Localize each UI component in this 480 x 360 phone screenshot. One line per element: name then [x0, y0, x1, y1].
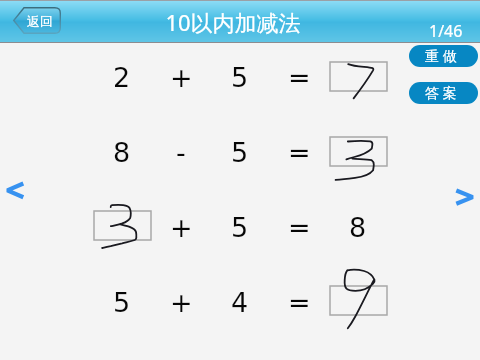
staticText: 重 做	[425, 46, 457, 65]
button[interactable]: Redo	[409, 45, 478, 67]
staticText: +	[170, 62, 193, 93]
button[interactable]: 返回	[13, 7, 61, 34]
button[interactable]: Show answer	[409, 82, 478, 104]
staticText: 5	[113, 287, 131, 318]
staticText: =	[288, 212, 311, 243]
staticText: 10以内加减法	[0, 7, 473, 37]
button[interactable]: Next question	[445, 180, 479, 218]
staticText: =	[288, 62, 311, 93]
staticText: 2	[113, 62, 131, 93]
button[interactable]: Previous question	[0, 172, 34, 210]
staticText: +	[170, 287, 193, 318]
staticText: 1/46	[429, 20, 463, 42]
staticText: 返回	[27, 13, 53, 29]
staticText: +	[170, 212, 193, 243]
staticText: =	[288, 287, 311, 318]
staticText: 5	[231, 137, 249, 168]
staticText: 8	[349, 212, 367, 243]
staticText: 8	[113, 137, 131, 168]
staticText: 4	[231, 287, 249, 318]
staticText: 5	[231, 212, 249, 243]
staticText: 5	[231, 62, 249, 93]
staticText: -	[176, 137, 186, 168]
staticText: =	[288, 137, 311, 168]
staticText: 答 案	[425, 83, 457, 102]
